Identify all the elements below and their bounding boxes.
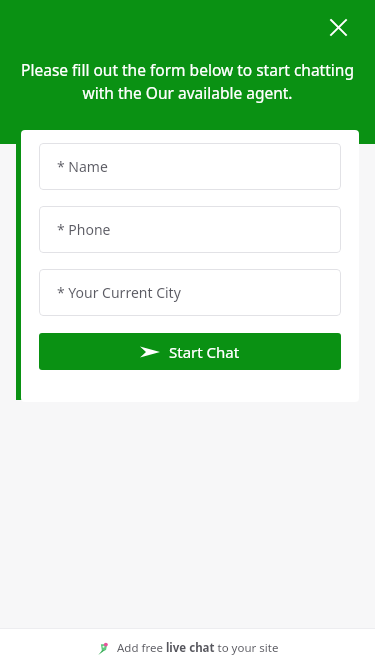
button[interactable]: * Your Current City — [39, 269, 341, 316]
button[interactable]: Start Chat — [39, 333, 341, 370]
staticText: * Your Current City — [57, 283, 181, 302]
button[interactable]: Add free live chat to your site — [0, 629, 375, 667]
staticText: Please fill out the form below to start … — [15, 59, 360, 104]
staticText: Add free live chat to your site — [117, 640, 279, 656]
staticText: * Name — [57, 157, 108, 176]
button[interactable]: * Phone — [39, 206, 341, 253]
button[interactable]: * Name — [39, 143, 341, 190]
button[interactable]: Close — [321, 10, 355, 44]
staticText: Start Chat — [169, 342, 240, 362]
staticText: * Phone — [57, 220, 111, 239]
